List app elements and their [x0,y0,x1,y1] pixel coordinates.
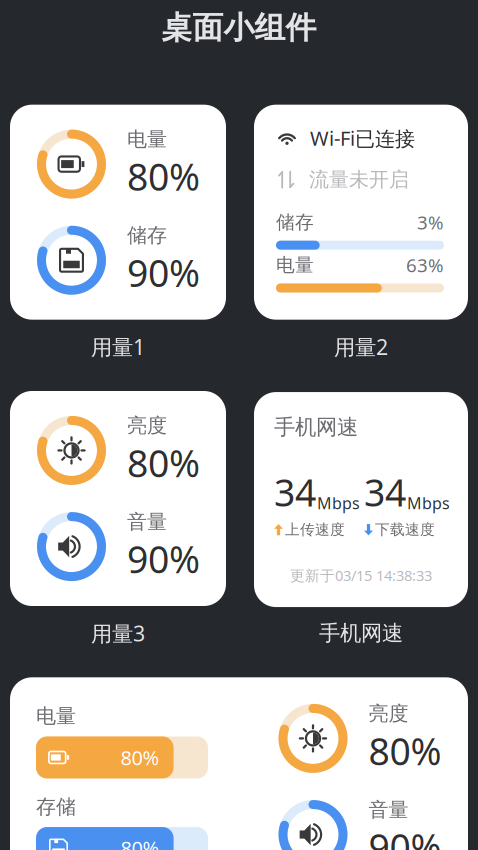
staticText: 手机网速 [319,620,403,646]
staticText: 63% [406,253,444,277]
staticText: 亮度 [368,701,408,726]
staticText: 3% [417,210,444,235]
staticText: 电量 [127,127,167,152]
staticText: 桌面小组件 [161,9,316,47]
staticText: Wi-Fi已连接 [310,125,415,151]
staticText: 电量 [36,704,76,728]
staticText: 80% [121,835,160,850]
staticText: 手机网速 [274,414,358,440]
staticText: 90% [127,534,200,584]
staticText: 储存 [276,211,314,234]
staticText: Mbps [407,492,450,514]
staticText: 90% [368,822,441,850]
staticText: 下载速度 [375,521,435,539]
staticText: Mbps [317,492,360,514]
button[interactable]: 电量 [10,105,226,320]
button[interactable]: 电量 [10,677,468,850]
staticText: 90% [127,248,200,297]
button[interactable]: 手机网速 [254,392,468,607]
staticText: 80% [368,726,441,775]
staticText: 用量1 [91,333,145,361]
staticText: 80% [121,744,160,771]
staticText: 用量2 [334,333,388,361]
staticText: 电量 [276,254,314,276]
staticText: 上传速度 [285,521,345,539]
staticText: 亮度 [127,413,167,438]
button[interactable]: 亮度 [10,391,226,606]
staticText: 存储 [36,794,76,819]
staticText: 用量3 [91,619,145,647]
staticText: 80% [127,438,200,487]
staticText: 流量未开启 [309,167,409,192]
button[interactable]: Wi-Fi已连接 [254,105,468,320]
staticText: 储存 [127,223,167,248]
staticText: 音量 [127,509,167,534]
staticText: 34 [274,467,316,517]
staticText: 更新于03/15 14:38:33 [290,566,432,585]
staticText: 80% [127,152,200,201]
staticText: 音量 [368,797,408,822]
staticText: 34 [364,467,406,517]
